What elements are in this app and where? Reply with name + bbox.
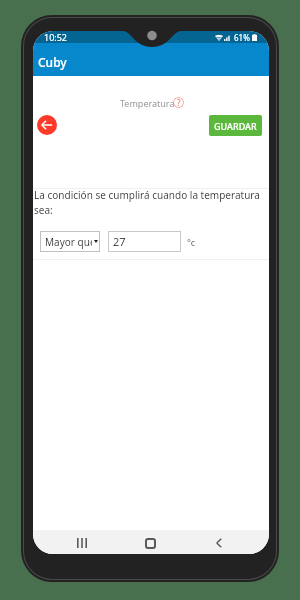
button[interactable]: Ayuda bbox=[173, 97, 184, 108]
staticText: 10:52 bbox=[44, 31, 68, 43]
button[interactable]: GUARDAR bbox=[209, 115, 262, 136]
button[interactable]: Atrás bbox=[37, 115, 57, 135]
staticText: Mayor que bbox=[45, 235, 92, 249]
button[interactable]: Home bbox=[136, 530, 165, 554]
staticText: 61% bbox=[234, 32, 250, 43]
button[interactable]: Back bbox=[204, 530, 233, 554]
staticText: GUARDAR bbox=[214, 120, 257, 132]
button[interactable]: Mayor que bbox=[40, 231, 100, 252]
staticText: La condición se cumplirá cuando la tempe… bbox=[34, 188, 262, 217]
staticText: ? bbox=[177, 97, 181, 108]
staticText: Cuby bbox=[38, 54, 67, 70]
staticText: 27 bbox=[113, 234, 126, 249]
staticText: °c bbox=[187, 236, 196, 248]
button[interactable]: Recents bbox=[67, 530, 96, 554]
staticText: Temperatura bbox=[120, 97, 175, 109]
button[interactable]: 27 bbox=[108, 231, 181, 252]
